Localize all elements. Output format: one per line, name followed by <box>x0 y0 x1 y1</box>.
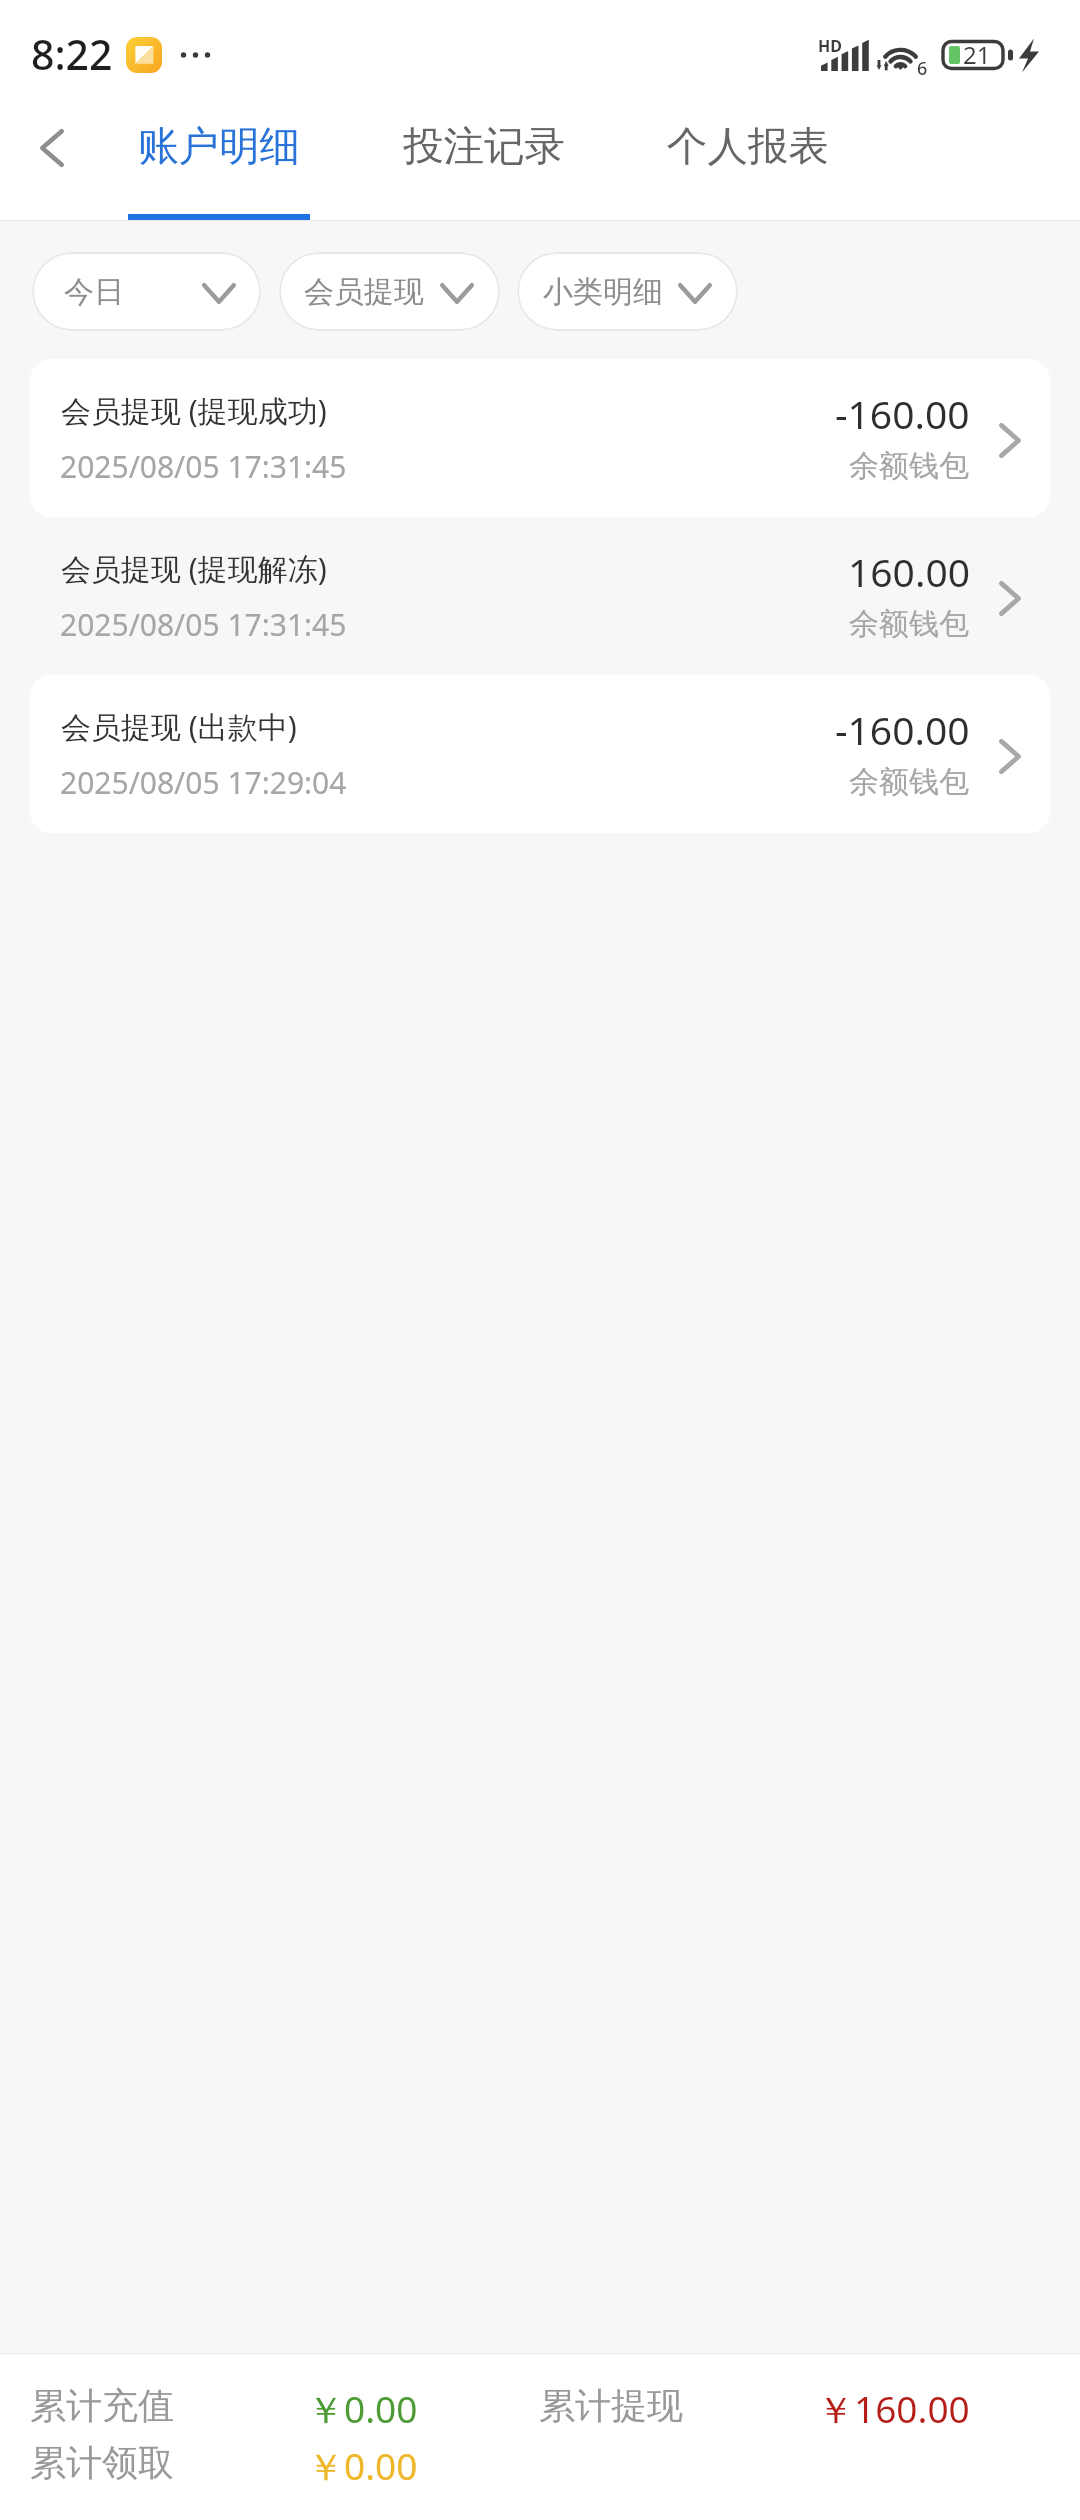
staticText: 6 <box>917 56 928 81</box>
staticText: 21 <box>963 38 991 71</box>
button[interactable]: 账户明细 <box>129 102 309 190</box>
button[interactable]: 今日 <box>32 252 261 331</box>
staticText: 余额钱包 <box>849 447 969 485</box>
staticText: 余额钱包 <box>849 763 969 801</box>
staticText: ￥160.00 <box>817 2383 970 2434</box>
button[interactable]: Back <box>20 116 84 180</box>
staticText: 今日 <box>64 273 124 311</box>
staticText: 投注记录 <box>403 121 565 172</box>
button[interactable]: 会员提现 (提现成功) <box>30 359 1050 517</box>
staticText: 个人报表 <box>667 121 829 172</box>
staticText: 余额钱包 <box>849 605 969 643</box>
button[interactable]: 会员提现 (提现解冻) <box>30 517 1050 675</box>
staticText: 会员提现 (提现成功) <box>61 390 327 431</box>
staticText: 2025/08/05 17:29:04 <box>60 762 347 803</box>
staticText: 账户明细 <box>138 121 300 172</box>
staticText: 会员提现 (出款中) <box>61 706 297 747</box>
button[interactable]: 个人报表 <box>658 102 838 190</box>
staticText: HD <box>818 35 842 57</box>
staticText: 累计充值 <box>30 2383 174 2428</box>
staticText: 累计领取 <box>30 2440 174 2485</box>
staticText: 小类明细 <box>543 273 663 311</box>
staticText: ￥0.00 <box>307 2440 418 2491</box>
staticText: 2025/08/05 17:31:45 <box>60 604 347 645</box>
staticText: -160.00 <box>835 387 970 440</box>
staticText: ￥0.00 <box>307 2383 418 2434</box>
button[interactable]: 会员提现 (出款中) <box>30 675 1050 833</box>
staticText: 会员提现 <box>304 273 424 311</box>
staticText: 8:22 <box>31 26 113 82</box>
staticText: 累计提现 <box>539 2383 683 2428</box>
button[interactable]: 会员提现 <box>279 252 500 331</box>
staticText: -160.00 <box>835 703 970 756</box>
staticText: 2025/08/05 17:31:45 <box>60 446 347 487</box>
staticText: 160.00 <box>848 545 970 598</box>
staticText: 会员提现 (提现解冻) <box>61 548 327 589</box>
button[interactable]: 投注记录 <box>394 102 574 190</box>
button[interactable]: 小类明细 <box>517 252 738 331</box>
